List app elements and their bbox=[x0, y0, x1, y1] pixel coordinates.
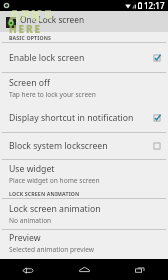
button[interactable]: Preview bbox=[0, 230, 168, 256]
button[interactable]: Home bbox=[56, 259, 112, 280]
staticText: APK bbox=[9, 4, 42, 25]
staticText: Use widget bbox=[9, 163, 55, 175]
button[interactable]: Screen off bbox=[0, 73, 168, 103]
button[interactable]: Recent apps bbox=[112, 259, 168, 280]
staticText: One Lock screen bbox=[20, 14, 85, 25]
staticText: No animation bbox=[9, 216, 52, 225]
button[interactable]: Display shortcut in notification bbox=[0, 103, 168, 132]
staticText: Place widget on home screen bbox=[9, 176, 100, 185]
button[interactable]: Enable lock screen bbox=[0, 43, 168, 72]
staticText: LOCK SCREEN ANIMATION bbox=[9, 190, 80, 197]
button[interactable]: Use widget bbox=[0, 160, 168, 188]
staticText: Lock screen animation bbox=[9, 203, 101, 215]
staticText: Display shortcut in notification bbox=[9, 112, 134, 124]
staticText: Selected animation preview bbox=[9, 245, 95, 254]
staticText: BASIC OPTIONS bbox=[9, 34, 52, 41]
staticText: Preview bbox=[9, 232, 41, 244]
staticText: Screen off bbox=[9, 77, 51, 89]
button[interactable]: Block system lockscreen bbox=[0, 133, 168, 159]
staticText: 12:17 bbox=[144, 0, 165, 11]
staticText: HERE bbox=[9, 22, 43, 36]
button[interactable]: Back bbox=[0, 259, 56, 280]
staticText: Tap here to lock your screen bbox=[9, 90, 96, 99]
staticText: Enable lock screen bbox=[9, 52, 85, 64]
button[interactable]: Lock screen animation bbox=[0, 199, 168, 229]
staticText: Block system lockscreen bbox=[9, 140, 108, 152]
